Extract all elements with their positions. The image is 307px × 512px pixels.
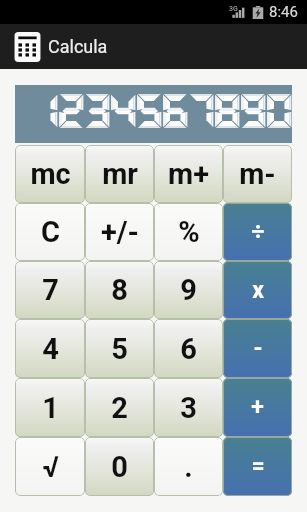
button[interactable]: 6 [154,319,223,378]
staticText: C [41,215,60,249]
staticText: . [184,450,193,484]
staticText: 5 [111,332,128,366]
button[interactable]: mr [85,145,154,203]
staticText: 4 [42,332,59,366]
button[interactable]: . [154,437,223,496]
button[interactable]: x [223,261,292,319]
button[interactable]: 1 [15,378,85,437]
button[interactable]: m- [223,145,292,203]
staticText: 6 [180,332,197,366]
button[interactable]: 0 [85,437,154,496]
staticText: m+ [168,157,209,191]
staticText: 7 [42,273,59,307]
staticText: m- [239,157,276,191]
button[interactable]: - [223,319,292,378]
button[interactable]: + [223,378,292,437]
staticText: +/- [101,215,139,249]
staticText: Calcula [48,36,108,57]
staticText: mc [30,157,71,191]
button[interactable]: = [223,437,292,496]
button[interactable]: 7 [15,261,85,319]
button[interactable]: 4 [15,319,85,378]
button[interactable]: 5 [85,319,154,378]
staticText: 3G [229,5,238,13]
button[interactable]: 9 [154,261,223,319]
staticText: 0 [111,450,128,484]
button[interactable]: m+ [154,145,223,203]
staticText: + [251,394,264,421]
staticText: √ [42,450,59,484]
button[interactable]: mc [15,145,85,203]
button[interactable]: 3 [154,378,223,437]
button[interactable]: +/- [85,203,154,261]
staticText: 3 [180,391,197,425]
button[interactable]: C [15,203,85,261]
button[interactable]: √ [15,437,85,496]
staticText: = [251,453,265,480]
staticText: 9 [180,273,197,307]
button[interactable]: 2 [85,378,154,437]
staticText: 8:46 [269,3,298,21]
button[interactable]: % [154,203,223,261]
staticText: 2 [111,391,128,425]
staticText: 1 [42,391,59,425]
button[interactable]: 8 [85,261,154,319]
staticText: % [178,215,200,249]
staticText: x [252,277,264,304]
staticText: ÷ [251,219,265,246]
button[interactable]: ÷ [223,203,292,261]
staticText: mr [102,157,138,191]
staticText: - [253,335,263,362]
staticText: 8 [111,273,128,307]
